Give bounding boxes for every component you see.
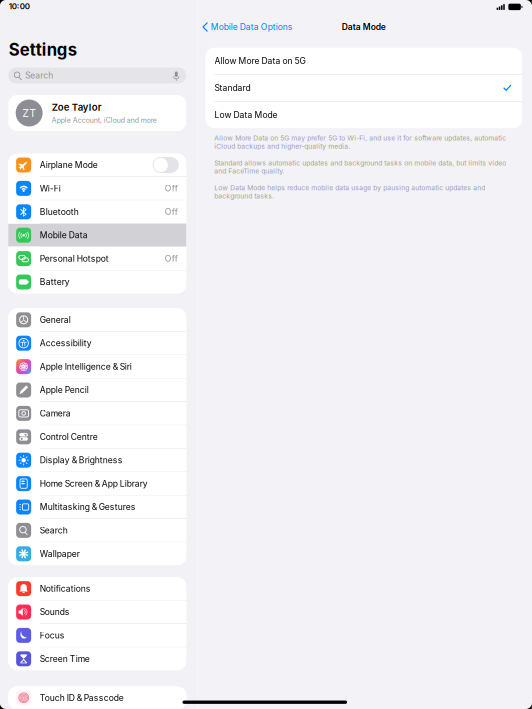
staticText: Apple Account, iCloud and more bbox=[52, 116, 157, 124]
staticText: Display & Brightness bbox=[40, 455, 123, 465]
staticText: Apple Pencil bbox=[40, 385, 89, 395]
staticText: Control Centre bbox=[40, 432, 98, 442]
button[interactable]: Multitasking & Gestures bbox=[8, 496, 186, 518]
staticText: Sounds bbox=[40, 607, 70, 617]
staticText: Mobile Data bbox=[40, 230, 88, 240]
staticText: Bluetooth bbox=[40, 207, 79, 217]
staticText: 10:00 bbox=[9, 1, 30, 11]
button[interactable]: Wi-Fi bbox=[8, 177, 186, 200]
button[interactable]: Touch ID & Passcode bbox=[8, 686, 186, 709]
button[interactable]: Personal Hotspot bbox=[8, 247, 186, 270]
button[interactable]: Mobile Data Options bbox=[195, 22, 293, 32]
staticText: Data Mode bbox=[342, 22, 386, 32]
staticText: Low Data Mode bbox=[215, 110, 278, 120]
staticText: Camera bbox=[40, 408, 71, 418]
staticText: Standard allows automatic updates and ba… bbox=[214, 159, 506, 175]
button[interactable]: Wallpaper bbox=[8, 542, 186, 565]
button[interactable]: Search bbox=[8, 67, 186, 83]
staticText: Off bbox=[165, 207, 178, 217]
staticText: Airplane Mode bbox=[40, 160, 98, 170]
button[interactable]: Airplane Mode bbox=[8, 154, 186, 176]
button[interactable]: Sounds bbox=[8, 601, 186, 623]
staticText: Multitasking & Gestures bbox=[40, 502, 136, 512]
button[interactable]: Bluetooth bbox=[8, 200, 186, 223]
staticText: Personal Hotspot bbox=[40, 253, 109, 264]
staticText: Home Screen & App Library bbox=[40, 478, 148, 489]
staticText: ZT bbox=[22, 106, 36, 119]
button[interactable]: Display & Brightness bbox=[8, 449, 186, 472]
button[interactable]: Notifications bbox=[8, 577, 186, 600]
button[interactable]: Accessibility bbox=[8, 332, 186, 355]
staticText: Wi-Fi bbox=[40, 183, 61, 193]
staticText: Screen Time bbox=[40, 654, 90, 664]
staticText: Settings bbox=[9, 39, 77, 60]
staticText: Wallpaper bbox=[40, 549, 80, 559]
staticText: Focus bbox=[40, 630, 65, 640]
staticText: Off bbox=[165, 253, 178, 264]
button[interactable]: ZT bbox=[8, 95, 186, 131]
button[interactable]: Battery bbox=[8, 271, 186, 293]
staticText: Notifications bbox=[40, 583, 91, 594]
button[interactable]: Mobile Data bbox=[8, 224, 186, 247]
button[interactable]: Home Screen & App Library bbox=[8, 472, 186, 495]
staticText: General bbox=[40, 315, 71, 325]
staticText: Battery bbox=[40, 277, 70, 287]
button[interactable]: Apple Intelligence & Siri bbox=[8, 355, 186, 378]
button[interactable]: General bbox=[8, 308, 186, 331]
button[interactable]: Apple Pencil bbox=[8, 379, 186, 401]
button[interactable]: Standard bbox=[205, 75, 522, 101]
button[interactable]: Screen Time bbox=[8, 647, 186, 670]
button[interactable]: Control Centre bbox=[8, 425, 186, 448]
staticText: Off bbox=[165, 183, 178, 193]
staticText: Mobile Data Options bbox=[211, 22, 293, 32]
staticText: Touch ID & Passcode bbox=[40, 693, 124, 703]
staticText: Search bbox=[25, 70, 53, 81]
staticText: Zoe Taylor bbox=[52, 101, 102, 113]
button[interactable]: Search bbox=[8, 519, 186, 542]
staticText: Search bbox=[40, 525, 68, 535]
staticText: Allow More Data on 5G may prefer 5G to W… bbox=[214, 134, 506, 150]
button[interactable]: Allow More Data on 5G bbox=[205, 48, 522, 74]
button[interactable]: Camera bbox=[8, 402, 186, 425]
staticText: Apple Intelligence & Siri bbox=[40, 361, 132, 372]
staticText: Allow More Data on 5G bbox=[215, 56, 306, 66]
staticText: Accessibility bbox=[40, 338, 92, 348]
button[interactable]: Focus bbox=[8, 624, 186, 647]
button[interactable]: Low Data Mode bbox=[205, 102, 522, 128]
staticText: Standard bbox=[215, 83, 251, 93]
staticText: Low Data Mode helps reduce mobile data u… bbox=[214, 184, 485, 200]
